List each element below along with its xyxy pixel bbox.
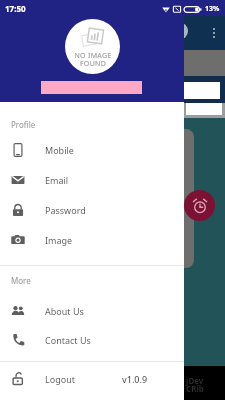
button[interactable]: More options [203, 22, 225, 44]
staticText: jDev CRib [186, 375, 204, 394]
button[interactable]: Add alarm [184, 190, 215, 221]
staticText: Profile [11, 119, 36, 130]
button[interactable]: Contact Us [0, 325, 184, 354]
staticText: Email [45, 174, 69, 186]
staticText: Contact Us [45, 334, 91, 346]
staticText: Logout [45, 373, 75, 385]
staticText: Password [45, 204, 86, 216]
button[interactable]: Mobile [0, 135, 184, 165]
staticText: Mobile [45, 144, 74, 156]
staticText: NO IMAGE FOUND [74, 51, 112, 68]
staticText: 17:50 [5, 3, 26, 14]
button[interactable]: About Us [0, 296, 184, 325]
staticText: 13% [205, 4, 220, 14]
button[interactable]: Logout [0, 364, 184, 394]
staticText: More [11, 275, 31, 286]
staticText: About Us [45, 305, 84, 317]
staticText: Image [45, 234, 73, 246]
button[interactable]: Email [0, 165, 184, 195]
button[interactable]: Profile photo [65, 19, 120, 74]
button[interactable]: Password [0, 195, 184, 225]
button[interactable]: Image [0, 225, 184, 255]
staticText: v1.0.9 [122, 373, 148, 385]
